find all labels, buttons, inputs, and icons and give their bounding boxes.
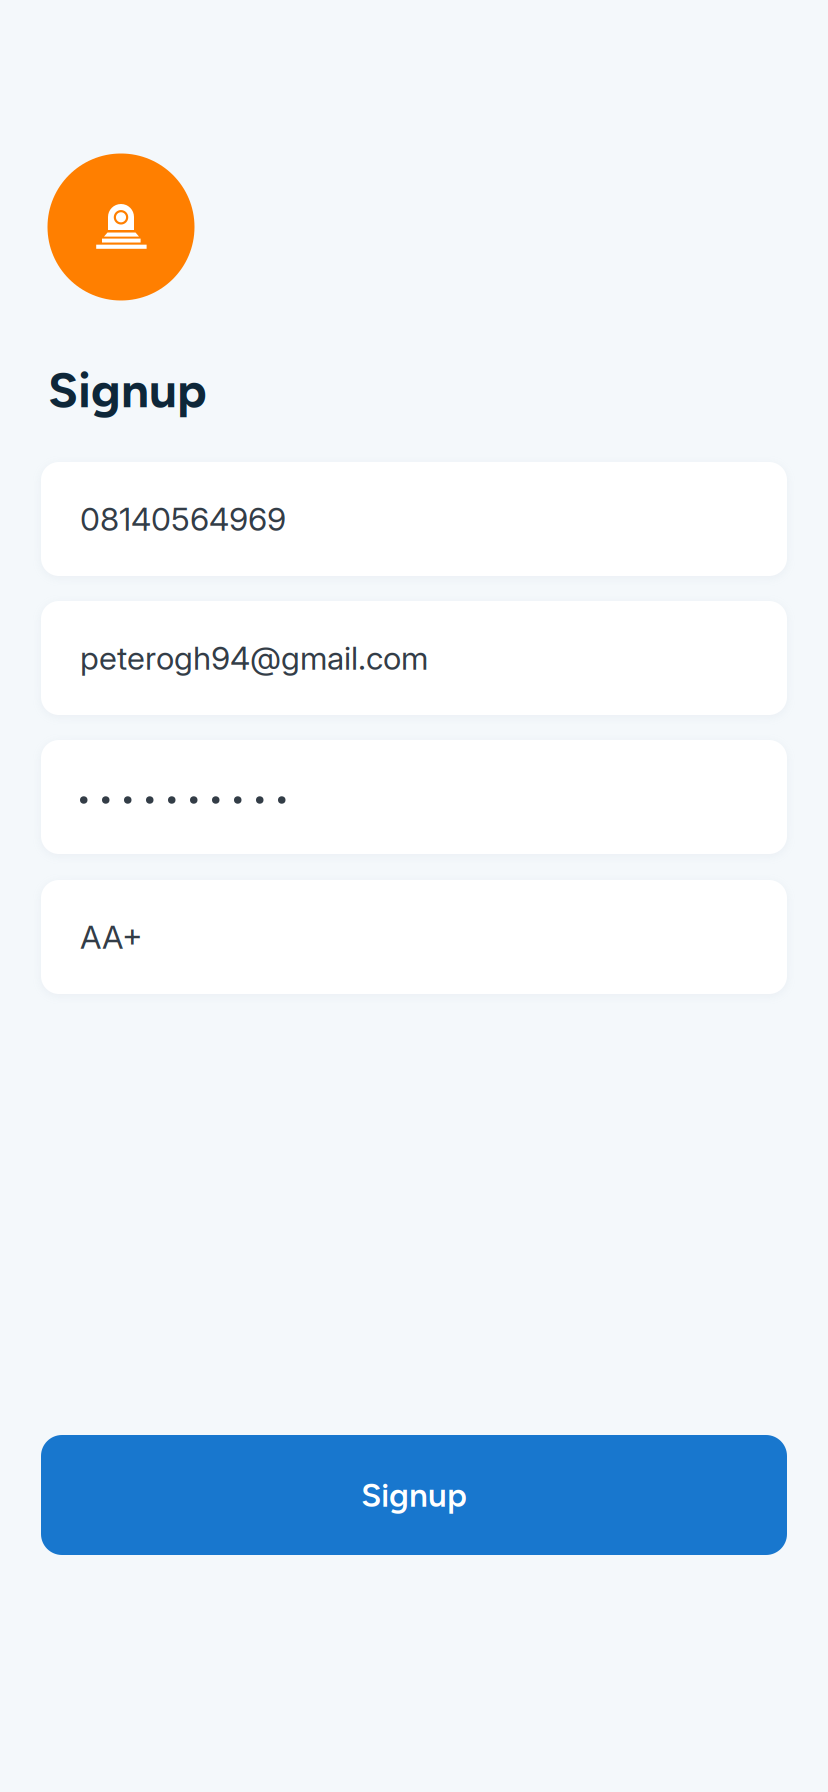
staticText: 08140564969 [80, 500, 286, 538]
staticText: peterogh94@gmail.com [80, 639, 428, 677]
button[interactable]: Phone number [41, 462, 787, 576]
button[interactable]: Signup [41, 1435, 787, 1555]
button[interactable]: Password [41, 740, 787, 854]
button[interactable]: Email [41, 601, 787, 715]
staticText: Signup [361, 1475, 467, 1515]
staticText: AA+ [80, 918, 143, 956]
button[interactable]: Blood group [41, 880, 787, 994]
staticText: Signup [48, 360, 207, 420]
